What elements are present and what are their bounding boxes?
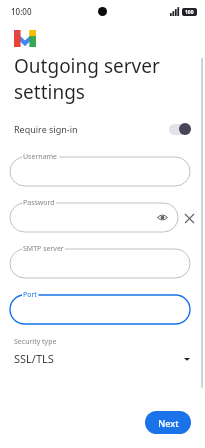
staticText: Require sign-in (14, 123, 78, 135)
staticText: 100 (185, 9, 194, 16)
button[interactable]: Require sign-in (0, 119, 205, 139)
staticText: Next (158, 417, 179, 429)
button[interactable]: Show password (154, 209, 170, 225)
staticText: Password (23, 198, 55, 208)
staticText: SMTP server (23, 244, 64, 254)
button[interactable]: Username (10, 152, 190, 186)
staticText: Port (23, 290, 37, 300)
button[interactable]: SMTP server (10, 244, 190, 278)
button[interactable]: Port (10, 290, 190, 324)
button[interactable]: Security type (0, 337, 205, 366)
staticText: SSL/TLS (14, 351, 54, 366)
button[interactable]: Next (145, 411, 191, 434)
button[interactable]: Password (10, 198, 178, 232)
staticText: settings (14, 79, 85, 105)
staticText: Username (23, 152, 58, 162)
other: Open security type menu (183, 355, 191, 363)
staticText: 10:00 (11, 6, 32, 17)
staticText: Security type (14, 337, 57, 347)
staticText: Outgoing server (14, 53, 160, 79)
button[interactable]: Clear password (181, 210, 197, 226)
